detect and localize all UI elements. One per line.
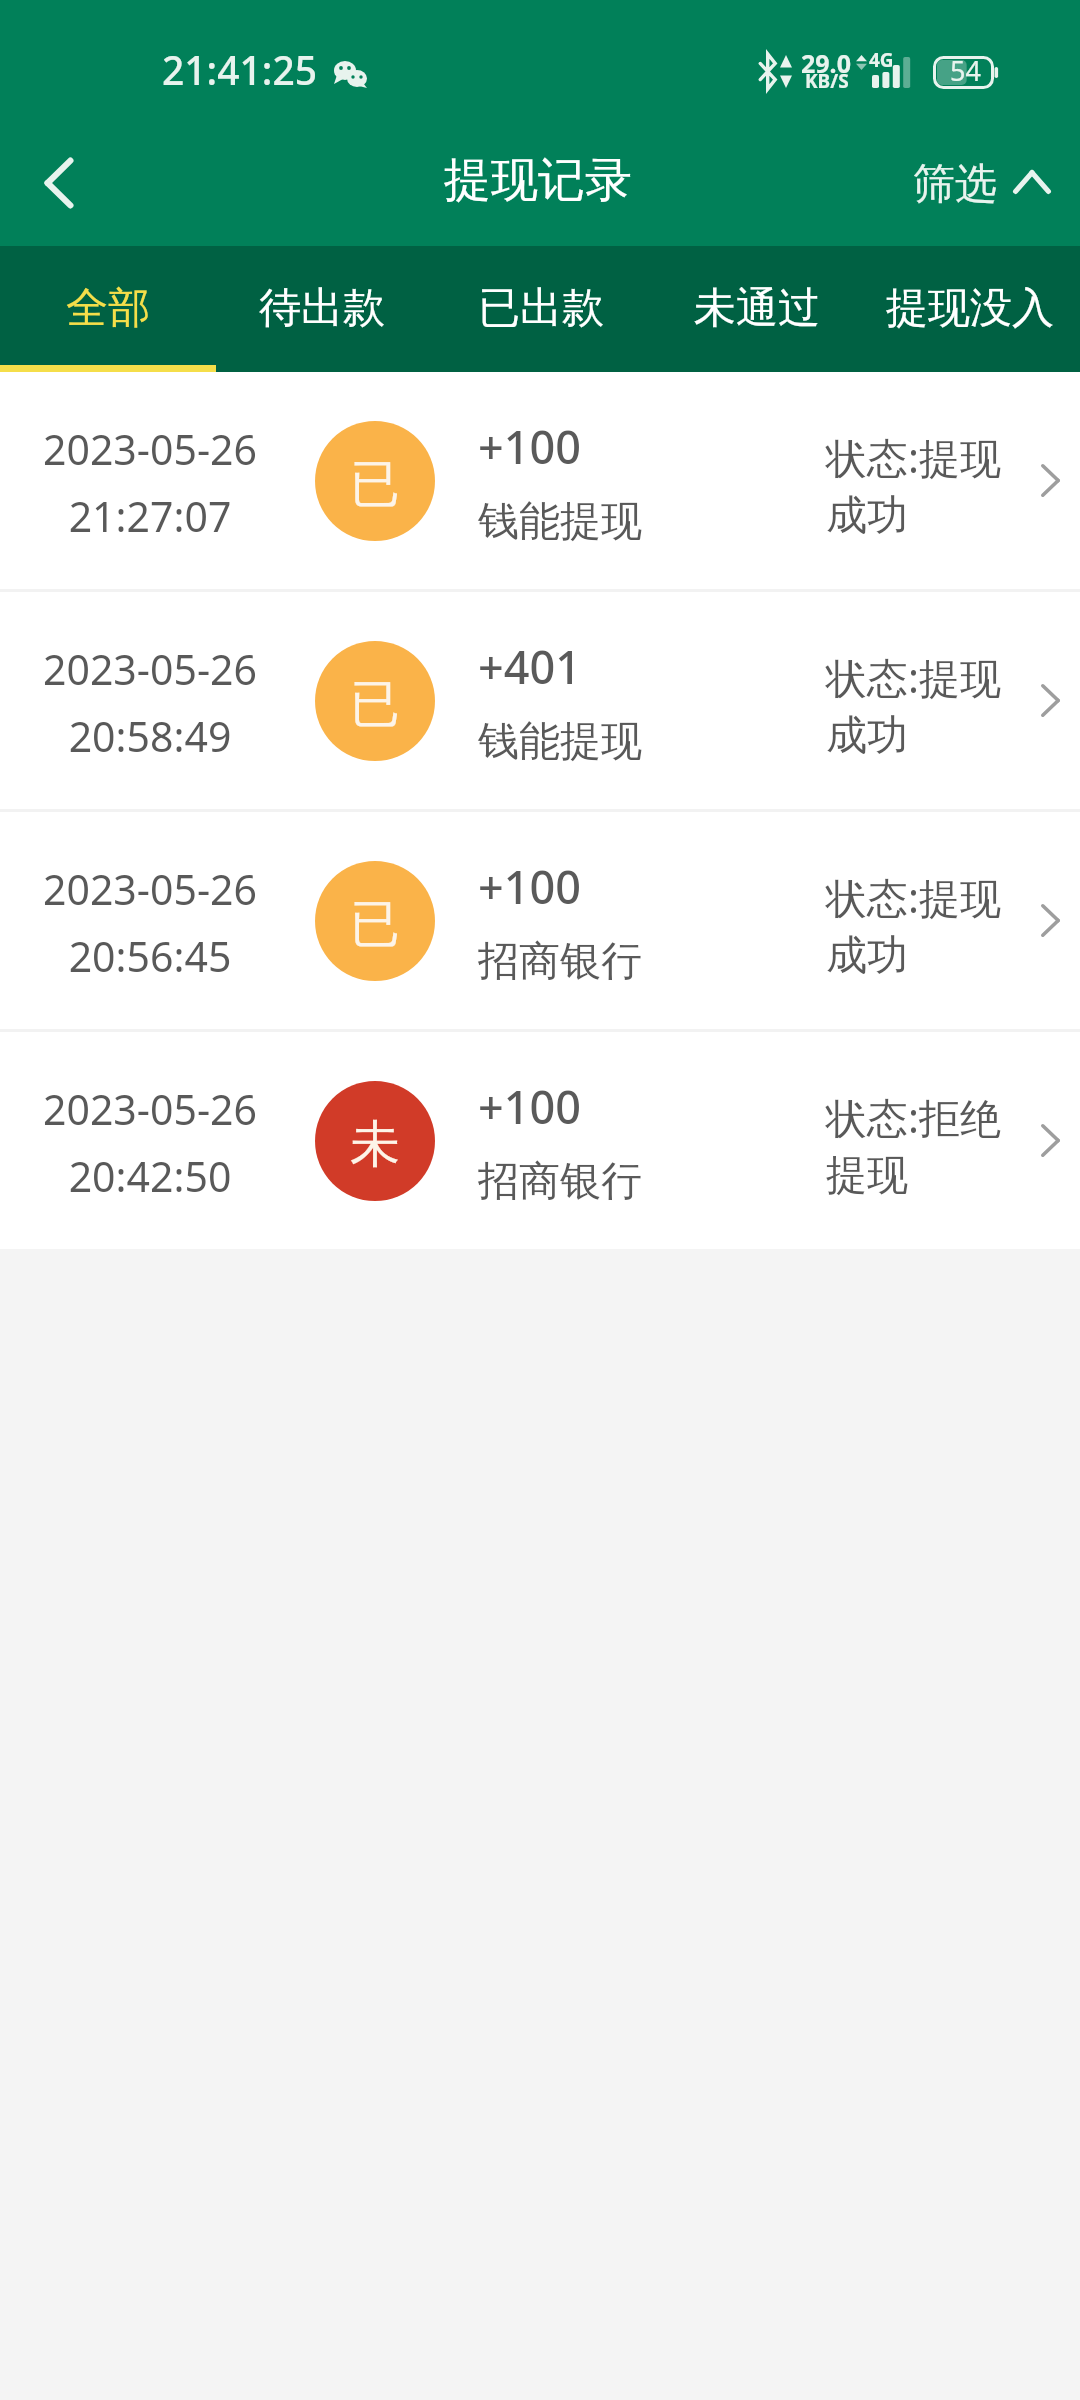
button[interactable]: 2023-05-26 20:58:49 <box>0 592 1080 809</box>
staticText: 21:41:25 <box>162 43 318 96</box>
staticText: 未 <box>350 1113 400 1176</box>
staticText: 筛选 <box>913 158 997 211</box>
staticText: 招商银行 <box>478 1156 642 1208</box>
staticText: 招商银行 <box>478 936 642 988</box>
button[interactable]: 已出款 <box>432 246 648 372</box>
staticText: 状态:提现 成功 <box>826 649 1001 761</box>
staticText: 2023-05-26 20:56:45 <box>0 861 300 984</box>
button[interactable]: 2023-05-26 20:42:50 <box>0 1032 1080 1249</box>
staticText: 已 <box>350 453 400 516</box>
staticText: +100 <box>478 856 581 917</box>
staticText: 未通过 <box>694 282 820 335</box>
staticText: 2023-05-26 21:27:07 <box>0 421 300 544</box>
staticText: 29.0 <box>801 46 851 80</box>
staticText: 2023-05-26 20:42:50 <box>0 1081 300 1204</box>
staticText: 提现没入 <box>886 282 1054 335</box>
button[interactable]: 待出款 <box>216 246 432 372</box>
staticText: 状态:提现 成功 <box>826 429 1001 541</box>
staticText: +401 <box>478 636 581 697</box>
staticText: 状态:拒绝 提现 <box>826 1089 1001 1201</box>
staticText: 提现记录 <box>444 151 632 210</box>
staticText: 已 <box>350 893 400 956</box>
staticText: 4G <box>869 47 894 73</box>
staticText: 待出款 <box>259 282 385 335</box>
button[interactable]: 提现没入 <box>864 246 1080 372</box>
staticText: 已出款 <box>478 282 604 335</box>
button[interactable]: 2023-05-26 20:56:45 <box>0 812 1080 1029</box>
staticText: KB/S <box>805 68 849 94</box>
button[interactable]: 筛选 <box>900 120 1080 246</box>
staticText: 已 <box>350 673 400 736</box>
staticText: 钱能提现 <box>478 496 642 548</box>
staticText: 54 <box>950 52 981 89</box>
staticText: 状态:提现 成功 <box>826 869 1001 981</box>
button[interactable]: 未通过 <box>648 246 864 372</box>
staticText: +100 <box>478 416 581 477</box>
button[interactable]: 2023-05-26 21:27:07 <box>0 372 1080 589</box>
staticText: 全部 <box>66 282 150 335</box>
staticText: 2023-05-26 20:58:49 <box>0 641 300 764</box>
button[interactable]: Back <box>0 120 112 246</box>
button[interactable]: 全部 <box>0 246 216 372</box>
staticText: 钱能提现 <box>478 716 642 768</box>
staticText: +100 <box>478 1076 581 1137</box>
